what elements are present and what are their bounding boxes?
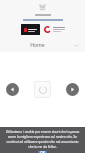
button[interactable]: Partner logo	[44, 24, 65, 35]
button[interactable]: Brand logo	[21, 24, 40, 35]
staticText: Utilizziamo i cookie per essere sicuri c…	[4, 130, 81, 149]
button[interactable]: Previous	[6, 83, 19, 96]
staticText: Home	[30, 42, 45, 49]
staticText: OK	[40, 151, 45, 153]
button[interactable]: Next	[66, 83, 79, 96]
button[interactable]: Home	[0, 40, 85, 51]
button[interactable]: Email link	[22, 19, 64, 21]
button[interactable]: OK	[38, 151, 47, 153]
